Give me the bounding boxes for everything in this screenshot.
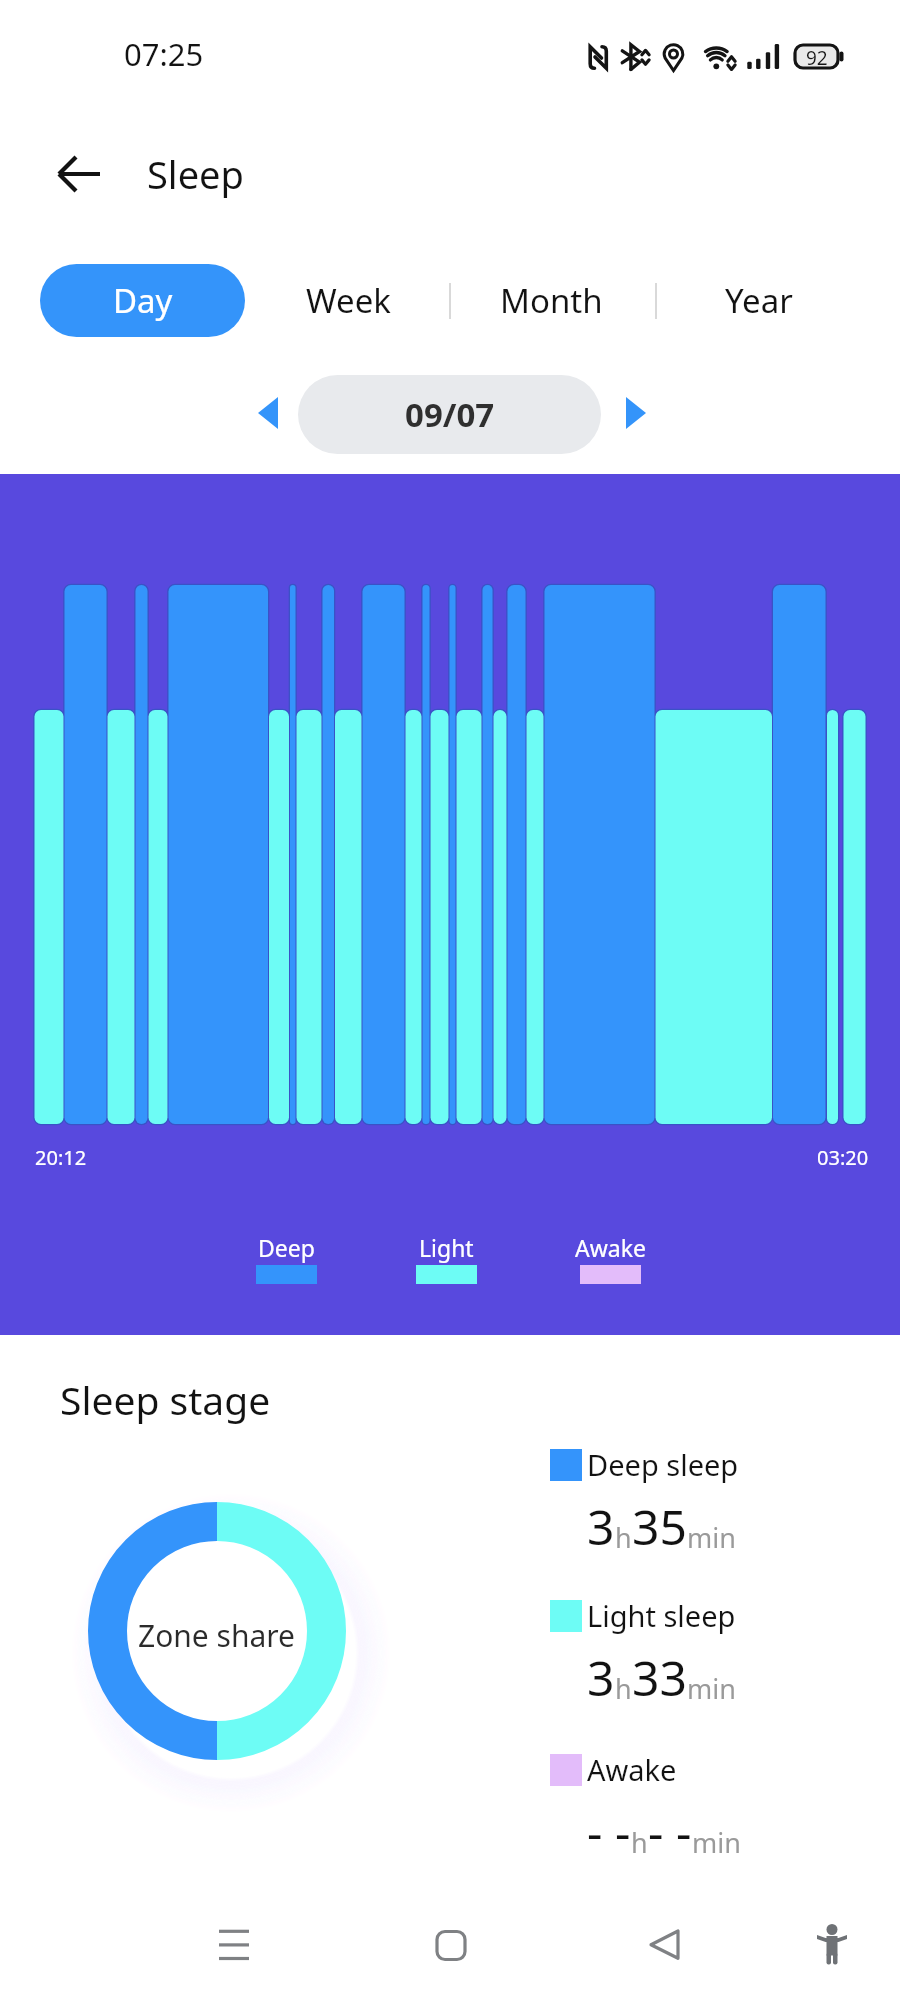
- staticText: Awake: [587, 1750, 677, 1789]
- staticText: Deep: [258, 1232, 315, 1263]
- staticText: Year: [725, 278, 793, 323]
- staticText: 20:12: [35, 1144, 87, 1171]
- button[interactable]: Recent apps: [204, 1920, 264, 1980]
- button[interactable]: Light: [356, 1232, 536, 1292]
- staticText: h: [615, 1519, 632, 1556]
- button[interactable]: Day: [40, 264, 245, 337]
- button[interactable]: Awake: [550, 1750, 677, 1789]
- staticText: min: [687, 1519, 736, 1556]
- button[interactable]: Home: [418, 1920, 478, 1980]
- staticText: h: [631, 1824, 648, 1861]
- button[interactable]: Next day: [618, 393, 652, 427]
- staticText: - -: [587, 1799, 631, 1864]
- staticText: 35: [632, 1494, 687, 1559]
- button[interactable]: Month: [500, 264, 603, 337]
- staticText: Awake: [575, 1232, 646, 1263]
- button[interactable]: Accessibility: [802, 1920, 862, 1980]
- staticText: Light sleep: [587, 1596, 736, 1635]
- staticText: min: [692, 1824, 741, 1861]
- staticText: 03:20: [817, 1144, 869, 1171]
- staticText: Light: [419, 1232, 474, 1263]
- staticText: Week: [306, 278, 391, 323]
- staticText: 07:25: [124, 33, 204, 75]
- staticText: h: [615, 1670, 632, 1707]
- staticText: 3: [587, 1494, 615, 1559]
- button[interactable]: Back: [40, 138, 112, 210]
- staticText: 92: [806, 45, 828, 68]
- staticText: - -: [648, 1799, 692, 1864]
- button[interactable]: Deep sleep: [550, 1445, 739, 1484]
- staticText: Zone share: [138, 1615, 296, 1656]
- staticText: Day: [113, 278, 173, 323]
- button[interactable]: 09/07: [298, 375, 601, 454]
- staticText: 3: [587, 1645, 615, 1710]
- button[interactable]: Back: [634, 1920, 694, 1980]
- staticText: Deep sleep: [587, 1445, 739, 1484]
- staticText: 09/07: [405, 392, 495, 437]
- button[interactable]: Deep: [196, 1232, 376, 1292]
- staticText: Sleep stage: [60, 1373, 271, 1426]
- button[interactable]: Previous day: [252, 393, 286, 427]
- button[interactable]: Light sleep: [550, 1596, 736, 1635]
- staticText: Month: [500, 278, 603, 323]
- staticText: Sleep: [147, 148, 244, 200]
- button[interactable]: Week: [306, 264, 391, 337]
- staticText: 33: [632, 1645, 687, 1710]
- button[interactable]: Awake: [520, 1232, 700, 1292]
- button[interactable]: Year: [725, 264, 793, 337]
- staticText: min: [687, 1670, 736, 1707]
